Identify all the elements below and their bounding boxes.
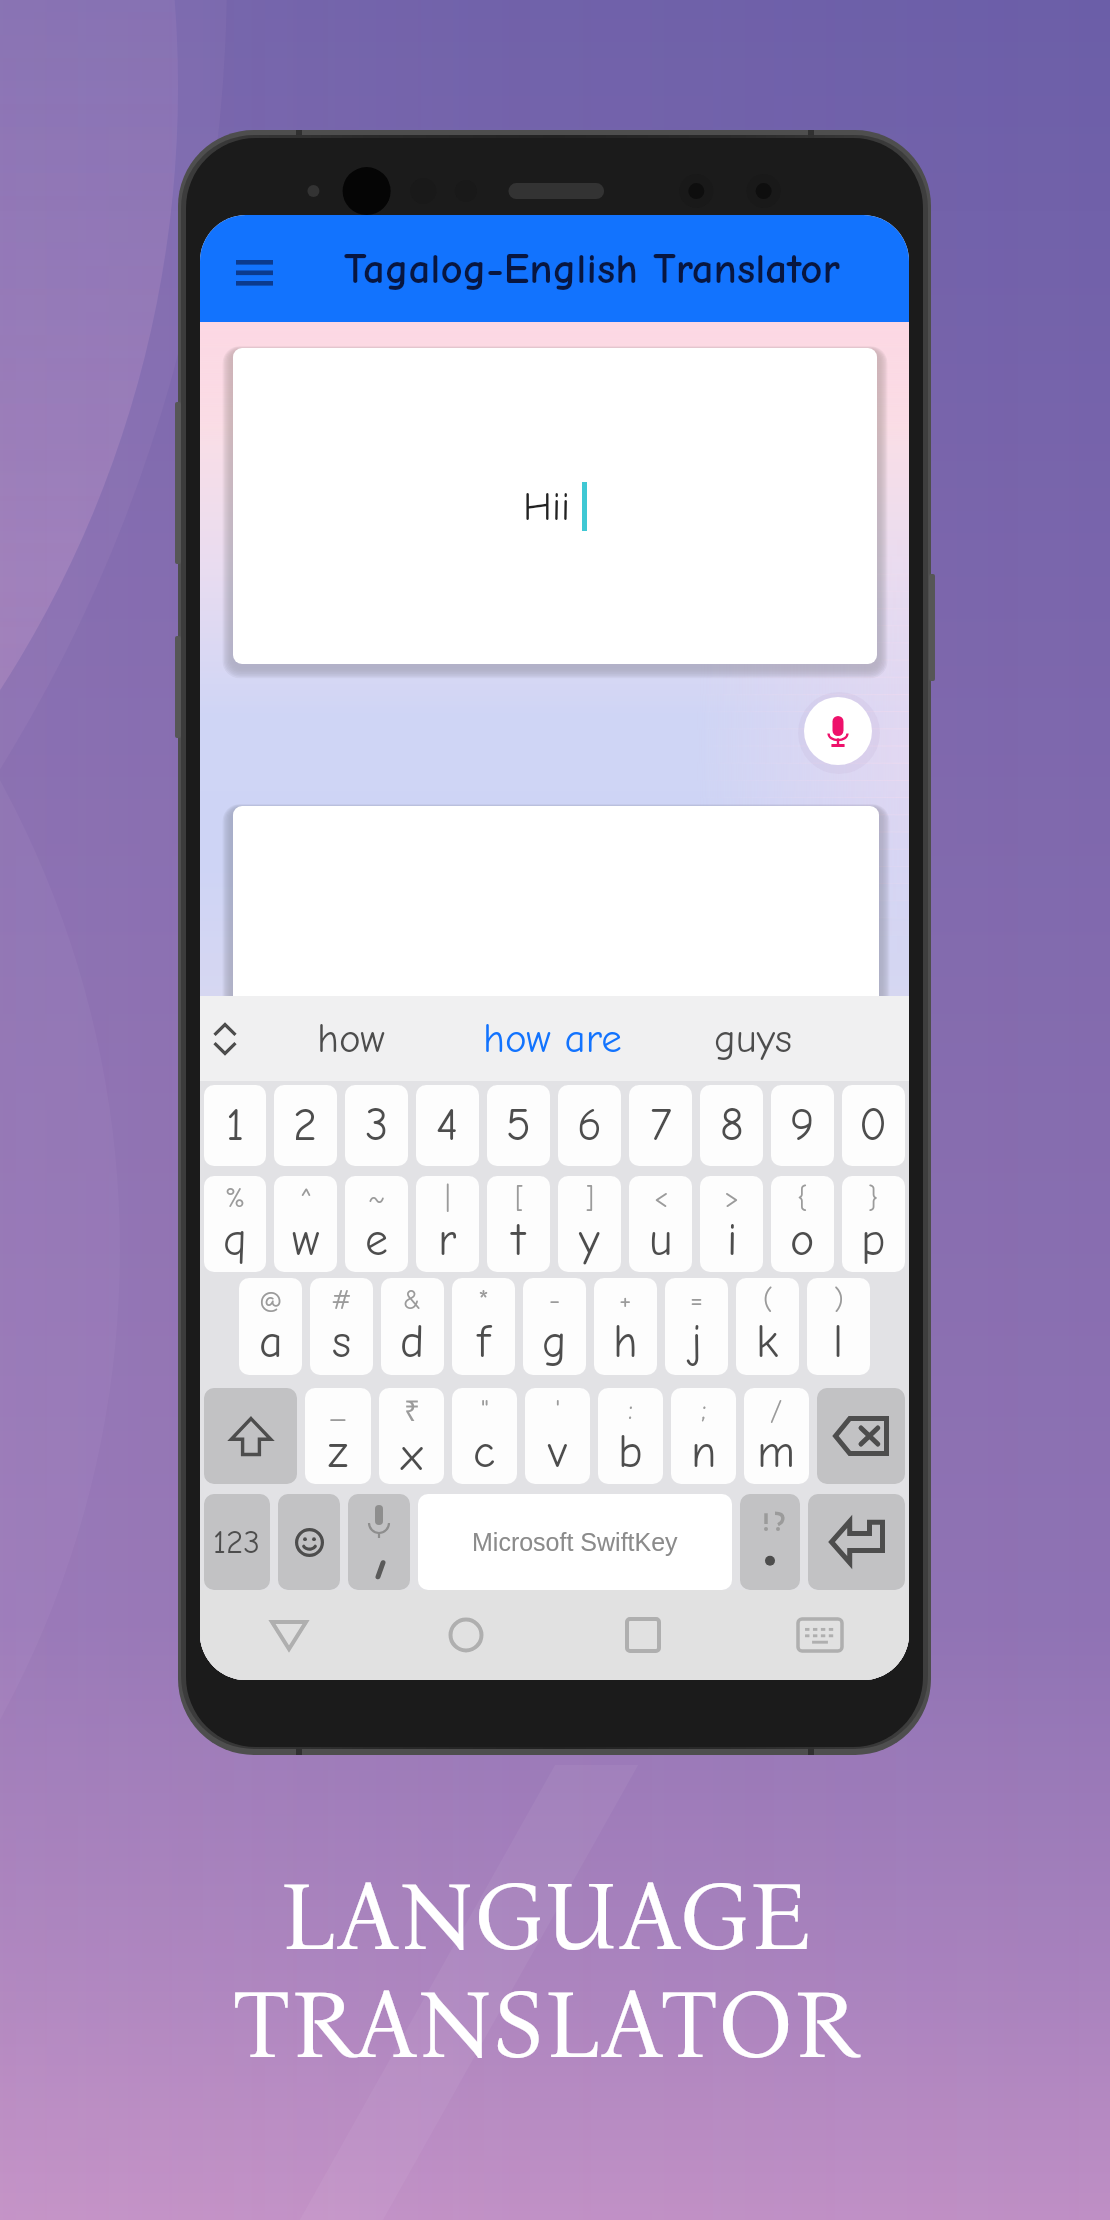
staticText: % [225, 1182, 246, 1214]
staticText: y [579, 1214, 600, 1267]
staticText: " [481, 1394, 489, 1426]
button[interactable]: / [744, 1388, 809, 1484]
button[interactable]: - [523, 1278, 586, 1375]
staticText: f [477, 1316, 490, 1369]
staticText: p [861, 1214, 886, 1267]
staticText: g [542, 1316, 567, 1369]
button[interactable]: > [700, 1176, 763, 1272]
staticText: 1 [226, 1099, 245, 1152]
button[interactable]: 1 [204, 1085, 266, 1166]
staticText: o [790, 1214, 815, 1267]
staticText: m [757, 1426, 796, 1479]
button[interactable]: 7 [629, 1085, 692, 1166]
staticText: r [438, 1214, 457, 1267]
button[interactable]: Backspace [817, 1388, 905, 1484]
button[interactable]: ~ [345, 1176, 408, 1272]
staticText: ) [834, 1284, 844, 1316]
button[interactable]: % [204, 1176, 266, 1272]
button[interactable]: ; [671, 1388, 736, 1484]
button[interactable]: how are [452, 996, 653, 1081]
button[interactable]: _ [305, 1388, 371, 1484]
staticText: 3 [365, 1099, 389, 1152]
staticText: ] [585, 1182, 594, 1214]
button[interactable]: Hii [233, 348, 877, 664]
staticText: i [727, 1214, 738, 1267]
staticText: LANGUAGE [280, 1859, 811, 1975]
button[interactable]: how [250, 996, 452, 1081]
staticText: z [328, 1426, 348, 1479]
button[interactable]: < [629, 1176, 692, 1272]
button[interactable]: Shift [204, 1388, 297, 1484]
button[interactable]: ) [807, 1278, 870, 1375]
button[interactable]: 8 [700, 1085, 763, 1166]
staticText: a [259, 1316, 283, 1369]
button[interactable]: Open navigation menu [200, 215, 309, 322]
button[interactable]: 9 [771, 1085, 834, 1166]
staticText: ~ [368, 1182, 386, 1214]
staticText: TRANSLATOR [231, 1967, 860, 2083]
staticText: ' [555, 1394, 561, 1426]
staticText: how are [483, 1015, 622, 1062]
button[interactable]: Home [377, 1590, 554, 1680]
button[interactable]: Speak to translate [804, 697, 872, 765]
button[interactable]: 0 [842, 1085, 905, 1166]
button[interactable]: | [416, 1176, 479, 1272]
button[interactable]: Voice typing [348, 1494, 410, 1590]
staticText: | [445, 1182, 451, 1214]
button[interactable]: Back [200, 1590, 377, 1680]
staticText: c [473, 1426, 496, 1479]
button[interactable]: ' [525, 1388, 590, 1484]
button[interactable]: ₹ [379, 1388, 444, 1484]
button[interactable]: @ [239, 1278, 302, 1375]
staticText: & [403, 1284, 422, 1316]
button[interactable]: " [452, 1388, 517, 1484]
staticText: t [512, 1214, 526, 1267]
button[interactable]: Punctuation [740, 1494, 800, 1590]
button[interactable]: 6 [558, 1085, 621, 1166]
button[interactable]: ^ [274, 1176, 337, 1272]
staticText: ; [701, 1394, 707, 1426]
button[interactable]: 5 [487, 1085, 550, 1166]
staticText: e [365, 1214, 389, 1267]
button[interactable]: 4 [416, 1085, 479, 1166]
staticText: < [654, 1182, 669, 1214]
staticText: 5 [506, 1099, 531, 1152]
button[interactable]: = [665, 1278, 728, 1375]
staticText: Hii [523, 484, 571, 530]
button[interactable]: Hide keyboard [731, 1590, 908, 1680]
staticText: d [400, 1316, 425, 1369]
button[interactable]: Enter [808, 1494, 905, 1590]
staticText: Tagalog-English Translator [344, 244, 840, 293]
staticText: 2 [293, 1099, 318, 1152]
button[interactable]: * [452, 1278, 515, 1375]
staticText: 8 [720, 1099, 744, 1152]
button[interactable]: { [771, 1176, 834, 1272]
staticText: { [797, 1182, 808, 1214]
button[interactable]: ] [558, 1176, 621, 1272]
button[interactable] [233, 806, 879, 1066]
staticText: k [756, 1316, 779, 1369]
button[interactable]: + [594, 1278, 657, 1375]
button[interactable]: [ [487, 1176, 550, 1272]
staticText: ₹ [404, 1391, 421, 1429]
button[interactable]: 2 [274, 1085, 337, 1166]
staticText: guys [714, 1015, 793, 1062]
button[interactable]: } [842, 1176, 905, 1272]
button[interactable]: Recent apps [554, 1590, 731, 1680]
button[interactable]: Emoji [278, 1494, 340, 1590]
staticText: @ [259, 1284, 283, 1316]
button[interactable]: guys [653, 996, 854, 1081]
button[interactable]: ( [736, 1278, 799, 1375]
button[interactable]: & [381, 1278, 444, 1375]
staticText: 9 [790, 1099, 815, 1152]
button[interactable]: # [310, 1278, 373, 1375]
staticText: l [833, 1316, 844, 1369]
staticText: u [649, 1214, 673, 1267]
button[interactable]: Microsoft SwiftKey [418, 1494, 732, 1590]
staticText: q [223, 1214, 247, 1267]
button[interactable]: Number keyboard [204, 1494, 270, 1590]
button[interactable]: 3 [345, 1085, 408, 1166]
button[interactable]: Expand suggestions [200, 996, 250, 1081]
staticText: : [628, 1394, 634, 1426]
button[interactable]: : [598, 1388, 663, 1484]
